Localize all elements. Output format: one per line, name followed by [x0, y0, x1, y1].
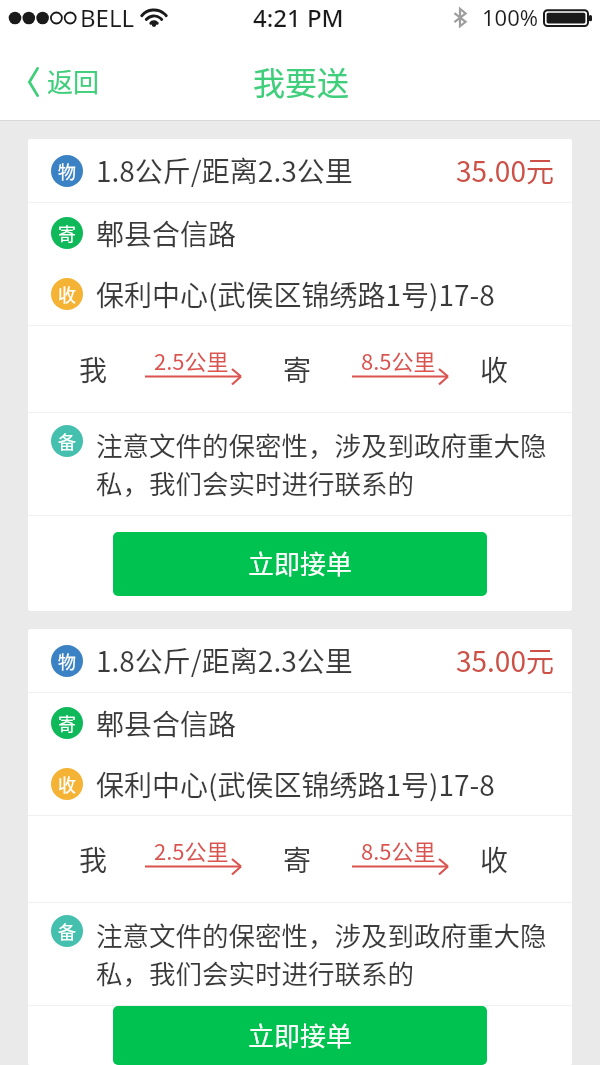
staticText: 100% [482, 2, 539, 32]
staticText: 立即接单 [248, 1016, 353, 1054]
staticText: 我 [79, 839, 108, 880]
staticText: 郫县合信路 [96, 703, 237, 744]
staticText: 保利中心(武侯区锦绣路1号)17-8 [96, 274, 495, 315]
staticText: 备 [58, 918, 76, 944]
staticText: 4:21 PM [253, 1, 344, 34]
button[interactable]: 返回 [0, 56, 122, 114]
staticText: 寄 [283, 349, 312, 390]
staticText: 返回 [47, 62, 100, 100]
staticText: 8.5公里 [361, 834, 436, 866]
staticText: 收 [480, 839, 509, 880]
staticText: 注意文件的保密性，涉及到政府重大隐私，我们会实时进行联系的 [96, 425, 552, 502]
staticText: BELL [80, 1, 135, 34]
staticText: 立即接单 [248, 544, 353, 582]
staticText: 1.8公斤/距离2.3公里 [96, 640, 353, 681]
staticText: 收 [58, 281, 76, 307]
staticText: 2.5公里 [154, 344, 229, 376]
staticText: 寄 [58, 710, 76, 736]
staticText: 2.5公里 [154, 834, 229, 866]
staticText: 物 [58, 158, 76, 184]
staticText: 物 [58, 648, 76, 674]
staticText: 寄 [58, 220, 76, 246]
staticText: 8.5公里 [361, 344, 436, 376]
staticText: 1.8公斤/距离2.3公里 [96, 150, 353, 191]
staticText: 备 [58, 428, 76, 454]
button[interactable]: 物 [28, 139, 572, 611]
button[interactable]: 立即接单 [113, 1006, 487, 1065]
staticText: 35.00元 [456, 640, 554, 681]
staticText: 郫县合信路 [96, 213, 237, 254]
staticText: 收 [480, 349, 509, 390]
staticText: 寄 [283, 839, 312, 880]
staticText: 我 [79, 349, 108, 390]
staticText: 我要送 [253, 58, 350, 104]
staticText: 保利中心(武侯区锦绣路1号)17-8 [96, 764, 495, 805]
button[interactable]: 立即接单 [113, 532, 487, 596]
staticText: 注意文件的保密性，涉及到政府重大隐私，我们会实时进行联系的 [96, 915, 552, 992]
staticText: 收 [58, 771, 76, 797]
button[interactable]: 物 [28, 629, 572, 1065]
staticText: 35.00元 [456, 150, 554, 191]
